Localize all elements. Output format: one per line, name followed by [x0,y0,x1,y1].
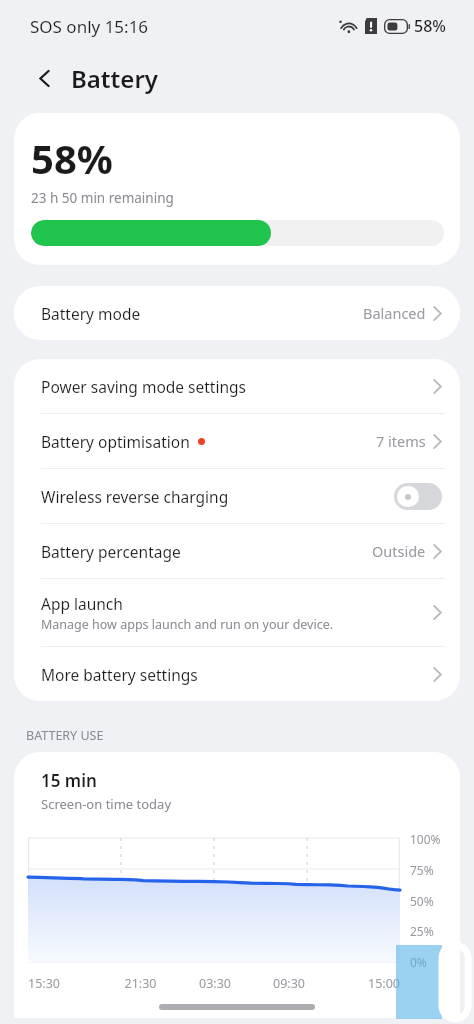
staticText: Power saving mode settings [41,376,247,397]
staticText: Screen-on time today [41,795,172,813]
button[interactable]: More battery settings [14,647,460,701]
staticText: 25% [410,923,434,937]
staticText: 75% [410,862,434,876]
staticText: Battery percentage [41,541,181,562]
button[interactable]: Battery percentage [14,524,460,578]
staticText: Manage how apps launch and run on your d… [41,616,334,633]
button[interactable]: Wireless reverse charging [14,469,460,523]
staticText: 03:30 [178,975,252,992]
staticText: SOS only 15:16 [30,15,149,38]
button[interactable]: 15 min [14,752,460,1018]
staticText: 7 items [376,431,426,451]
staticText: App launch [41,593,123,614]
staticText: 58% [31,131,113,185]
button[interactable]: Power saving mode settings [14,359,460,413]
staticText: Balanced [363,303,426,323]
staticText: 23 h 50 min remaining [31,189,174,207]
staticText: Battery optimisation [41,431,190,452]
staticText: 15:00 [326,975,400,992]
staticText: 100% [410,831,441,845]
staticText: 21:30 [103,975,178,992]
staticText: More battery settings [41,664,198,685]
staticText: 58% [414,15,446,37]
button[interactable]: App launch [14,579,460,646]
staticText: 09:30 [252,975,326,992]
staticText: Battery [71,62,158,95]
button[interactable]: Wireless reverse charging toggle [394,483,442,510]
staticText: 0% [410,954,427,968]
staticText: 15 min [41,769,97,792]
button[interactable]: Battery optimisation [14,414,460,468]
staticText: Battery mode [41,303,141,324]
staticText: Wireless reverse charging [41,486,229,507]
staticText: BATTERY USE [26,727,104,744]
staticText: 15:30 [28,975,103,992]
button[interactable]: Battery mode [14,286,460,340]
staticText: 50% [410,893,434,907]
button[interactable]: Back [28,61,62,95]
staticText: Outside [372,541,426,561]
